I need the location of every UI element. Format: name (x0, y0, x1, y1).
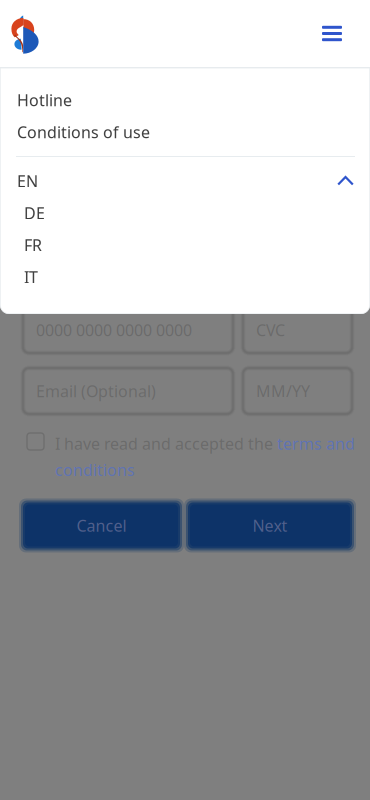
staticText: conditions (55, 459, 135, 480)
staticText: terms and (277, 433, 355, 454)
staticText: Hotline (17, 89, 72, 111)
staticText: I have read and accepted the (55, 433, 277, 454)
staticText: EN (17, 170, 38, 192)
staticText: MM/YY (256, 380, 310, 402)
button[interactable]: IT (0, 261, 370, 293)
staticText: IT (24, 266, 38, 288)
button[interactable]: Next (188, 502, 352, 548)
staticText: Email (Optional) (36, 380, 156, 402)
button[interactable]: DE (0, 197, 370, 229)
button[interactable]: Cancel (23, 502, 180, 548)
staticText: Cancel (76, 515, 126, 536)
button[interactable]: Hotline (0, 84, 370, 116)
staticText: FR (24, 234, 42, 256)
staticText: DE (24, 202, 45, 224)
staticText: Next (252, 515, 287, 536)
button[interactable]: Home (0, 0, 62, 67)
button[interactable]: EN (0, 165, 370, 197)
button[interactable]: Menu (306, 0, 370, 67)
staticText: CVC (256, 319, 285, 341)
button[interactable]: FR (0, 229, 370, 261)
staticText: Conditions of use (17, 121, 150, 143)
button[interactable]: Conditions of use (0, 116, 370, 148)
staticText: 0000 0000 0000 0000 (36, 319, 192, 341)
